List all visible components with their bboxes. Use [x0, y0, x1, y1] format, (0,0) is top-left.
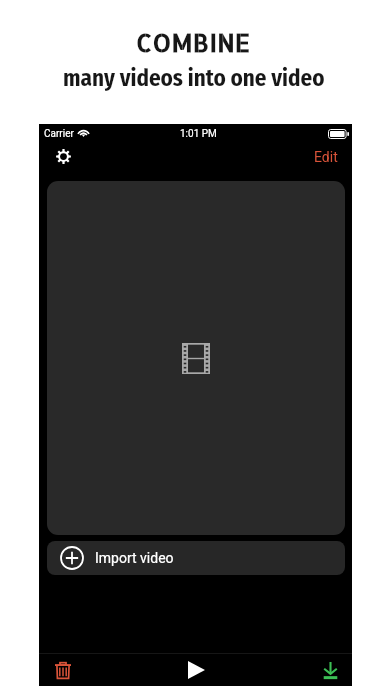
staticText: many videos into one video — [63, 64, 325, 92]
button[interactable]: Edit — [314, 144, 338, 169]
staticText: COMBINE — [136, 26, 251, 58]
staticText: Import video — [95, 550, 174, 566]
staticText: Carrier — [44, 128, 74, 140]
button[interactable]: Play — [176, 654, 216, 686]
staticText: 1:01 PM — [180, 128, 217, 140]
button[interactable]: Import video — [47, 541, 345, 575]
button[interactable]: Settings — [49, 144, 77, 169]
button[interactable]: Export — [310, 654, 350, 686]
button[interactable]: Delete — [43, 654, 83, 686]
staticText: Edit — [314, 149, 338, 165]
